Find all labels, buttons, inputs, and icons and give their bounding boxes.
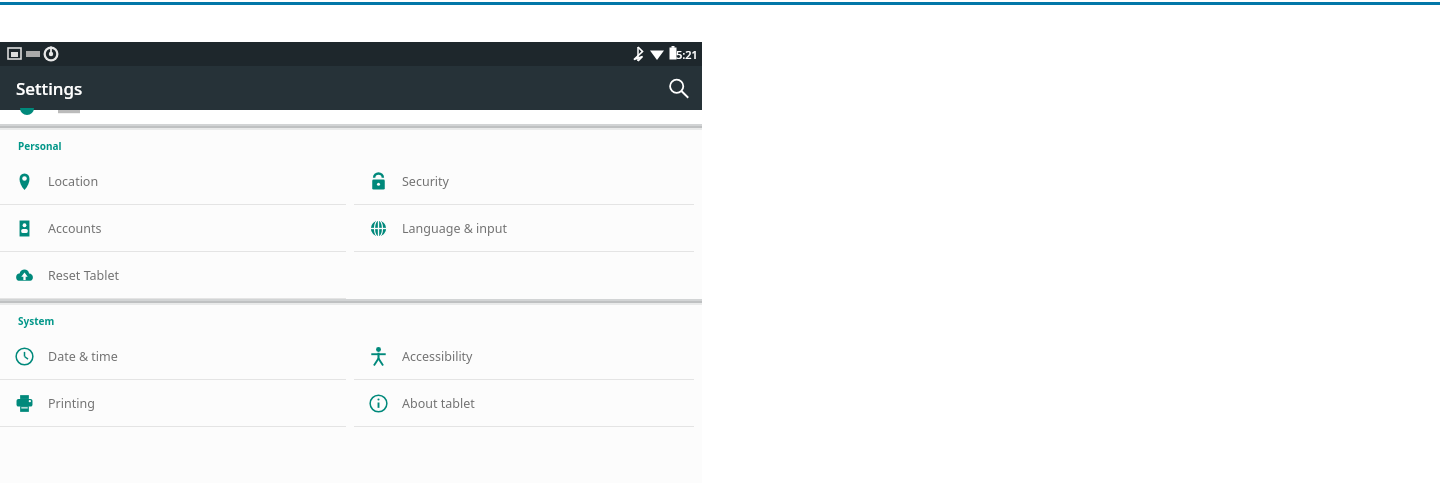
staticText: Location xyxy=(48,173,99,190)
button[interactable]: Location xyxy=(0,158,346,204)
button[interactable]: Accessibility xyxy=(354,333,694,379)
button[interactable]: Printing xyxy=(0,380,346,426)
button[interactable]: About tablet xyxy=(354,380,694,426)
staticText: Settings xyxy=(16,77,83,100)
staticText: Reset Tablet xyxy=(48,267,120,284)
staticText: Accounts xyxy=(48,220,102,237)
staticText: About tablet xyxy=(402,395,475,412)
staticText: Date & time xyxy=(48,348,118,365)
staticText: Language & input xyxy=(402,220,507,237)
button[interactable]: Security xyxy=(354,158,694,204)
button[interactable]: Search xyxy=(660,70,696,106)
button[interactable]: Accounts xyxy=(0,205,346,251)
button[interactable]: Language & input xyxy=(354,205,694,251)
staticText: Printing xyxy=(48,395,95,412)
staticText: System xyxy=(18,314,55,328)
button[interactable]: Reset Tablet xyxy=(0,252,346,298)
staticText: 5:21 xyxy=(676,47,698,62)
staticText: Accessibility xyxy=(402,348,473,365)
staticText: Personal xyxy=(18,139,62,153)
button[interactable]: Date & time xyxy=(0,333,346,379)
staticText: Security xyxy=(402,173,449,190)
